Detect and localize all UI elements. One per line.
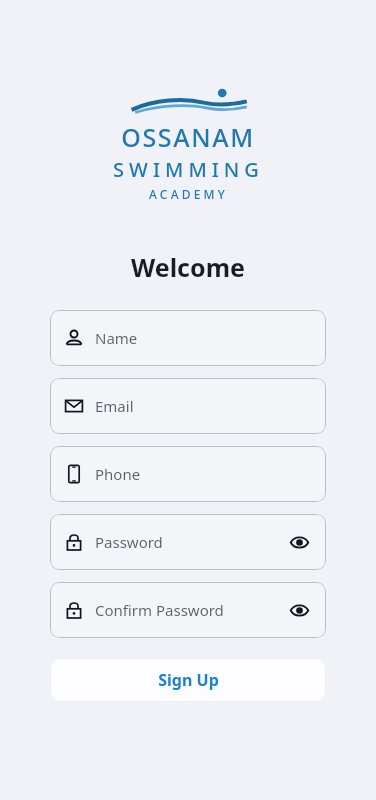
- staticText: Email: [95, 396, 134, 416]
- staticText: OSSANAM: [121, 120, 255, 154]
- button[interactable]: Show password: [286, 529, 312, 555]
- button[interactable]: Email: [50, 378, 326, 434]
- staticText: ACADEMY: [149, 186, 228, 202]
- button[interactable]: Name: [50, 310, 326, 366]
- staticText: Confirm Password: [95, 600, 224, 620]
- button[interactable]: Password: [50, 514, 326, 570]
- staticText: Phone: [95, 464, 141, 484]
- button[interactable]: Show password: [286, 597, 312, 623]
- staticText: Password: [95, 532, 163, 552]
- staticText: Sign Up: [158, 669, 219, 691]
- button[interactable]: Sign Up: [50, 658, 326, 702]
- button[interactable]: Confirm Password: [50, 582, 326, 638]
- staticText: Welcome: [131, 250, 245, 284]
- button[interactable]: Phone: [50, 446, 326, 502]
- staticText: SWIMMING: [113, 156, 264, 183]
- staticText: Name: [95, 328, 138, 348]
